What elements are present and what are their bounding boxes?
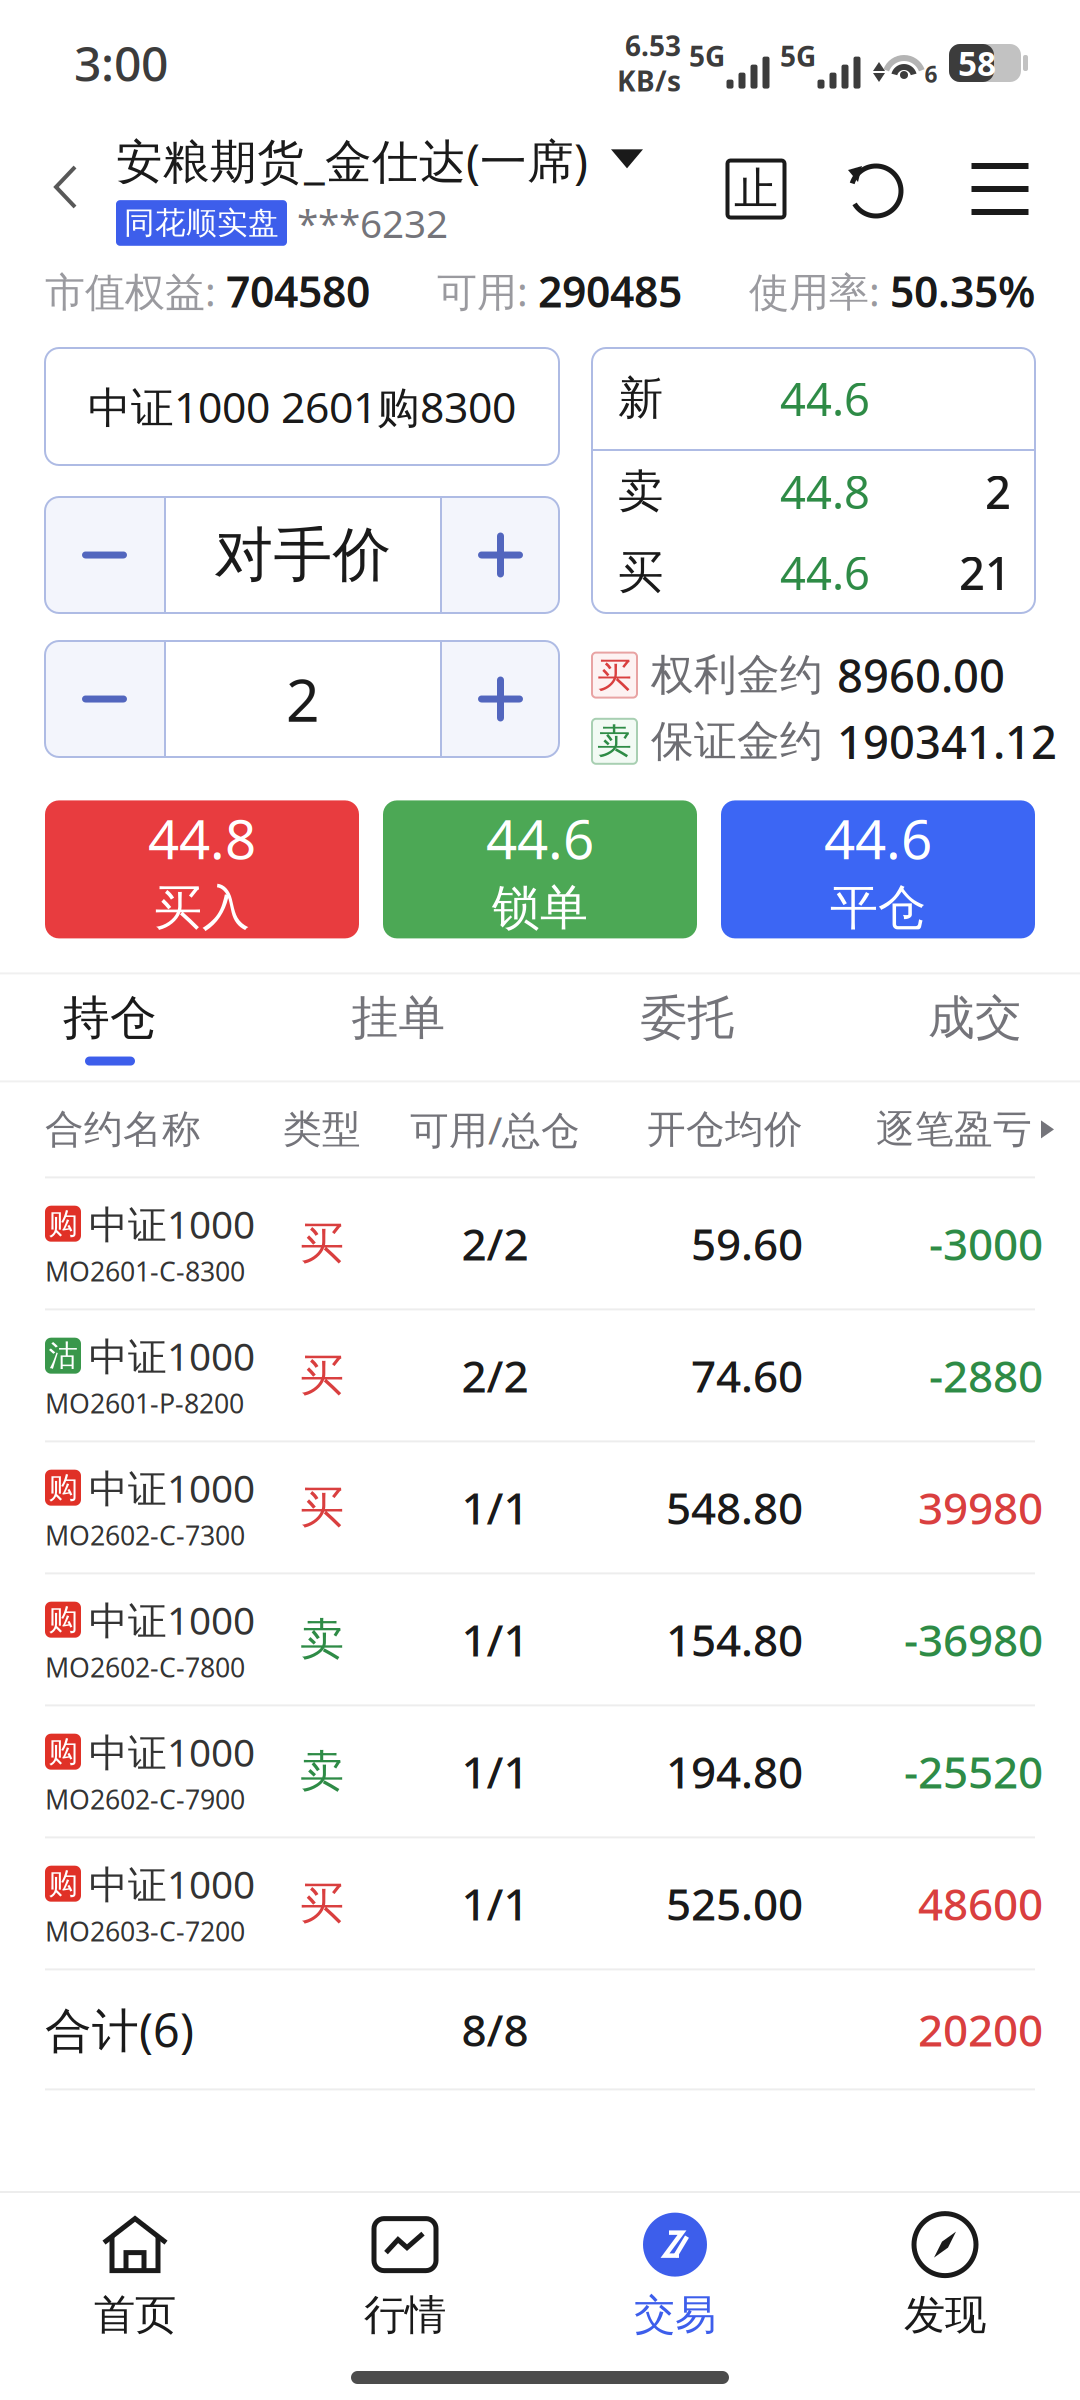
staticText: 新	[618, 371, 663, 426]
button[interactable]: 委托	[577, 974, 798, 1080]
staticText: 购	[48, 1866, 77, 1902]
staticText: 使用率:	[749, 264, 890, 317]
button[interactable]: 挂单	[220, 974, 577, 1080]
button[interactable]: Refresh	[828, 141, 924, 237]
button[interactable]: Stop order	[708, 141, 804, 237]
staticText: 中证1000	[89, 1594, 255, 1645]
staticText: 类型	[283, 1106, 361, 1153]
staticText: 44.8	[780, 461, 870, 522]
staticText: 逐笔盈亏	[876, 1106, 1032, 1153]
staticText: 194.80	[666, 1742, 803, 1801]
staticText: 44.6	[824, 802, 932, 874]
button[interactable]: Decrease	[45, 497, 164, 613]
staticText: 1/1	[461, 1610, 528, 1669]
button[interactable]: 中证1000 2601购8300	[45, 348, 559, 465]
staticText: 市值权益:	[45, 264, 226, 317]
staticText: 8/8	[461, 2000, 528, 2059]
button[interactable]: Increase	[442, 497, 559, 613]
staticText: 525.00	[666, 1874, 803, 1933]
staticText: 发现	[904, 2290, 986, 2340]
staticText: 交易	[634, 2290, 716, 2340]
staticText: 权利金约	[651, 649, 823, 701]
staticText: 2/2	[461, 1346, 528, 1405]
button[interactable]: 行情	[270, 2184, 540, 2352]
staticText: 74.60	[691, 1346, 803, 1405]
staticText: 首页	[94, 2290, 176, 2340]
staticText: 59.60	[691, 1214, 803, 1273]
staticText: 买入	[154, 878, 250, 937]
staticText: 中证1000	[89, 1858, 255, 1909]
staticText: 买	[300, 1216, 344, 1270]
staticText: 48600	[918, 1874, 1043, 1933]
staticText: 购	[48, 1602, 77, 1638]
button[interactable]: 44.8	[45, 800, 359, 938]
staticText: 行情	[364, 2290, 446, 2340]
staticText: 合约名称	[45, 1106, 201, 1153]
button[interactable]: 交易	[540, 2184, 810, 2352]
staticText: -25520	[904, 1742, 1043, 1801]
staticText: MO2601-P-8200	[45, 1385, 244, 1421]
staticText: 154.80	[666, 1610, 803, 1669]
staticText: 548.80	[666, 1478, 803, 1537]
button[interactable]: Back	[16, 137, 116, 241]
staticText: 1/1	[461, 1874, 528, 1933]
staticText: -2880	[929, 1346, 1043, 1405]
staticText: 中证1000	[89, 1462, 255, 1513]
staticText: 沽	[48, 1338, 77, 1374]
staticText: 平仓	[830, 878, 926, 937]
staticText: MO2602-C-7800	[45, 1649, 245, 1685]
staticText: MO2602-C-7900	[45, 1781, 245, 1817]
staticText: MO2603-C-7200	[45, 1913, 245, 1949]
staticText: 58	[958, 41, 996, 85]
button[interactable]: Increase	[442, 641, 559, 757]
staticText: 买	[300, 1480, 344, 1534]
staticText: 对手价	[214, 519, 391, 591]
staticText: -36980	[904, 1610, 1043, 1669]
button[interactable]: 持仓	[0, 974, 220, 1080]
staticText: 2	[985, 461, 1011, 522]
staticText: 44.6	[780, 542, 870, 603]
staticText: 可用/总仓	[410, 1104, 580, 1155]
button[interactable]: Decrease	[45, 641, 164, 757]
staticText: 5G	[780, 37, 816, 75]
button[interactable]: 成交	[834, 974, 1080, 1080]
staticText: 50.35%	[890, 263, 1035, 319]
staticText: 卖	[597, 720, 632, 763]
staticText: 购	[48, 1470, 77, 1506]
staticText: 买	[300, 1876, 344, 1930]
staticText: 买	[300, 1348, 344, 1402]
staticText: 290485	[538, 263, 682, 319]
staticText: 中证1000	[89, 1726, 255, 1777]
staticText: 39980	[918, 1478, 1043, 1537]
staticText: 止	[734, 162, 778, 216]
staticText: 购	[48, 1734, 77, 1770]
staticText: 保证金约	[651, 715, 823, 767]
staticText: 2/2	[461, 1214, 528, 1273]
button[interactable]: 首页	[0, 2184, 270, 2352]
staticText: 5G	[689, 37, 725, 75]
staticText: 1/1	[461, 1478, 528, 1537]
staticText: 卖	[300, 1612, 344, 1666]
staticText: 购	[48, 1206, 77, 1242]
staticText: 卖	[618, 464, 663, 519]
staticText: 2	[286, 660, 320, 738]
staticText: 合计(6)	[45, 1998, 194, 2060]
staticText: 6	[924, 59, 937, 89]
button[interactable]: Menu	[952, 141, 1048, 237]
staticText: 6.53	[625, 27, 681, 64]
staticText: -3000	[929, 1214, 1043, 1273]
staticText: 成交	[928, 989, 1022, 1046]
staticText: 锁单	[492, 878, 588, 937]
button[interactable]: 发现	[810, 2184, 1080, 2352]
staticText: KB/s	[617, 62, 681, 99]
staticText: 买	[618, 545, 663, 600]
button[interactable]: 44.6	[383, 800, 697, 938]
staticText: 安粮期货_金仕达(一席)	[116, 129, 588, 191]
staticText: 44.6	[780, 368, 870, 429]
button[interactable]: 44.6	[721, 800, 1035, 938]
staticText: 委托	[640, 989, 734, 1046]
staticText: 可用:	[437, 264, 538, 317]
staticText: 卖	[300, 1744, 344, 1798]
staticText: ***6232	[297, 197, 448, 249]
staticText: 中证1000 2601购8300	[88, 378, 516, 435]
